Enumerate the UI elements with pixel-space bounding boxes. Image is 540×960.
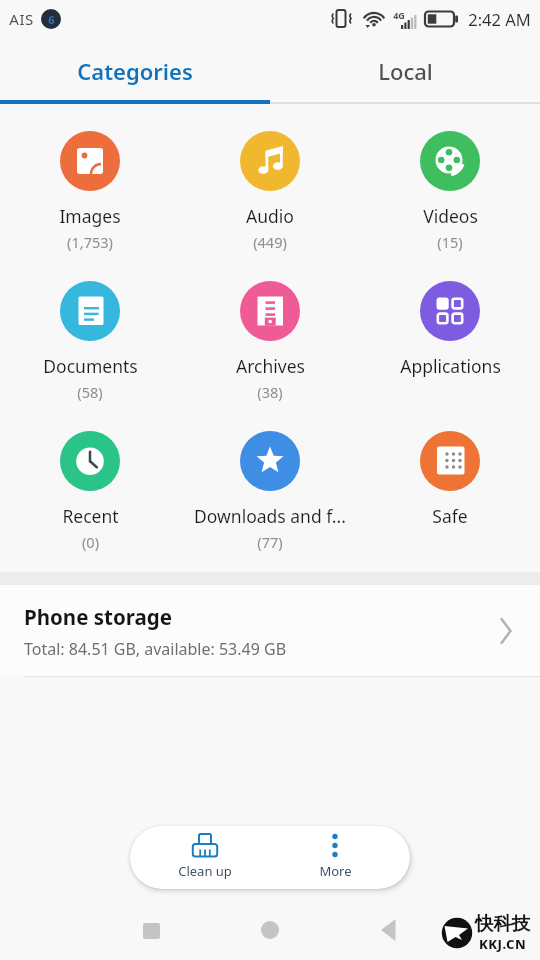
staticText: Recent <box>62 504 119 528</box>
button[interactable]: Archives <box>180 254 360 404</box>
staticText: Videos <box>423 204 478 228</box>
button[interactable]: Recent <box>0 404 180 554</box>
staticText: 快科技 <box>475 912 531 935</box>
button[interactable]: Safe <box>360 404 540 554</box>
staticText: Images <box>59 204 121 228</box>
staticText: Safe <box>432 504 468 528</box>
button[interactable]: Categories <box>0 38 270 104</box>
staticText: (77) <box>257 532 283 552</box>
staticText: Audio <box>246 204 294 228</box>
staticText: Clean up <box>178 862 232 880</box>
staticText: More <box>319 862 352 880</box>
staticText: (38) <box>257 382 283 402</box>
button[interactable]: Local <box>270 38 540 104</box>
staticText: Phone storage <box>24 603 172 631</box>
button[interactable] <box>92 900 210 960</box>
button[interactable]: More <box>270 826 400 889</box>
staticText: Total: 84.51 GB, available: 53.49 GB <box>24 638 287 660</box>
button[interactable]: Images <box>0 104 180 254</box>
staticText: (0) <box>82 532 99 552</box>
staticText: Local <box>378 56 433 86</box>
staticText: Documents <box>43 354 138 378</box>
staticText: (1,753) <box>67 232 113 252</box>
staticText: Downloads and f... <box>194 504 346 528</box>
staticText: (58) <box>77 382 103 402</box>
staticText: 6 <box>48 12 55 27</box>
staticText: (449) <box>253 232 287 252</box>
button[interactable]: Videos <box>360 104 540 254</box>
button[interactable]: Documents <box>0 254 180 404</box>
staticText: Archives <box>236 354 305 378</box>
button[interactable]: Clean up <box>140 826 270 889</box>
staticText: AIS <box>9 9 34 29</box>
staticText: (15) <box>437 232 463 252</box>
button[interactable]: Audio <box>180 104 360 254</box>
staticText: 4G <box>393 9 405 21</box>
staticText: Categories <box>77 56 193 86</box>
button[interactable]: Applications <box>360 254 540 404</box>
button[interactable]: Downloads and f... <box>180 404 360 554</box>
staticText: 2:42 AM <box>468 8 531 30</box>
button[interactable]: Phone storage <box>0 585 540 677</box>
staticText: KKJ.CN <box>479 935 527 953</box>
button[interactable] <box>329 900 448 960</box>
staticText: Applications <box>400 354 501 378</box>
button[interactable] <box>210 900 329 960</box>
